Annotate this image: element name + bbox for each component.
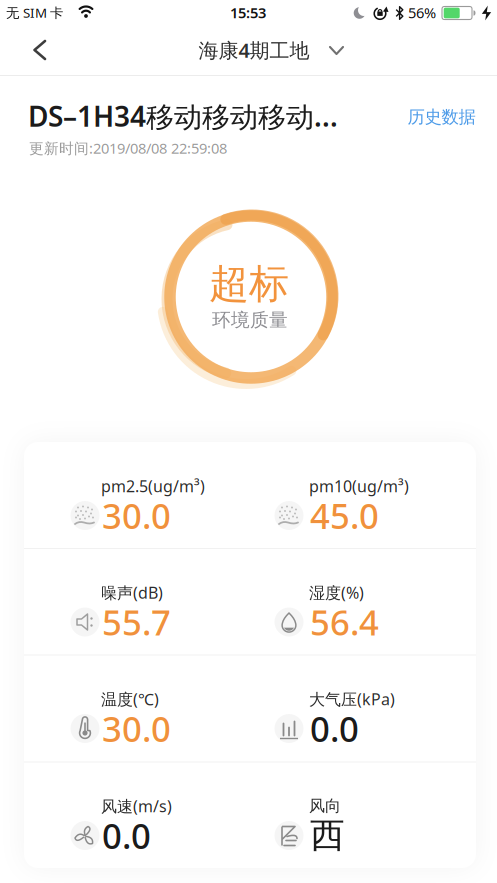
staticText: 湿度(%) (309, 582, 364, 603)
button[interactable]: 历史数据 (407, 106, 475, 128)
staticText: 西 (310, 814, 345, 857)
button[interactable]: Back (17, 28, 61, 72)
staticText: pm2.5(ug/m³) (101, 475, 205, 497)
staticText: 更新时间:2019/08/08 22:59:08 (29, 138, 227, 158)
staticText: 56.4 (310, 599, 379, 645)
staticText: 风速(m/s) (101, 795, 172, 817)
staticText: 噪声(dB) (101, 582, 163, 603)
staticText: 0.0 (310, 705, 359, 751)
staticText: 无 SIM 卡 (6, 4, 63, 21)
staticText: 大气压(kPa) (309, 688, 395, 710)
staticText: 15:53 (230, 3, 266, 22)
button[interactable]: 海康4期工地 (159, 28, 349, 72)
staticText: 30.0 (102, 492, 171, 538)
staticText: 45.0 (310, 492, 379, 538)
staticText: 55.7 (102, 599, 171, 645)
staticText: 56% (408, 3, 436, 22)
staticText: DS–1H34移动移动移动... (28, 97, 338, 135)
staticText: 30.0 (102, 705, 171, 751)
staticText: 0.0 (102, 812, 151, 858)
staticText: 温度(℃) (101, 688, 159, 710)
staticText: 海康4期工地 (198, 37, 309, 63)
staticText: 环境质量 (212, 308, 288, 331)
staticText: pm10(ug/m³) (309, 475, 409, 497)
staticText: 历史数据 (407, 106, 475, 128)
staticText: 风向 (309, 796, 341, 816)
staticText: 超标 (209, 259, 289, 308)
